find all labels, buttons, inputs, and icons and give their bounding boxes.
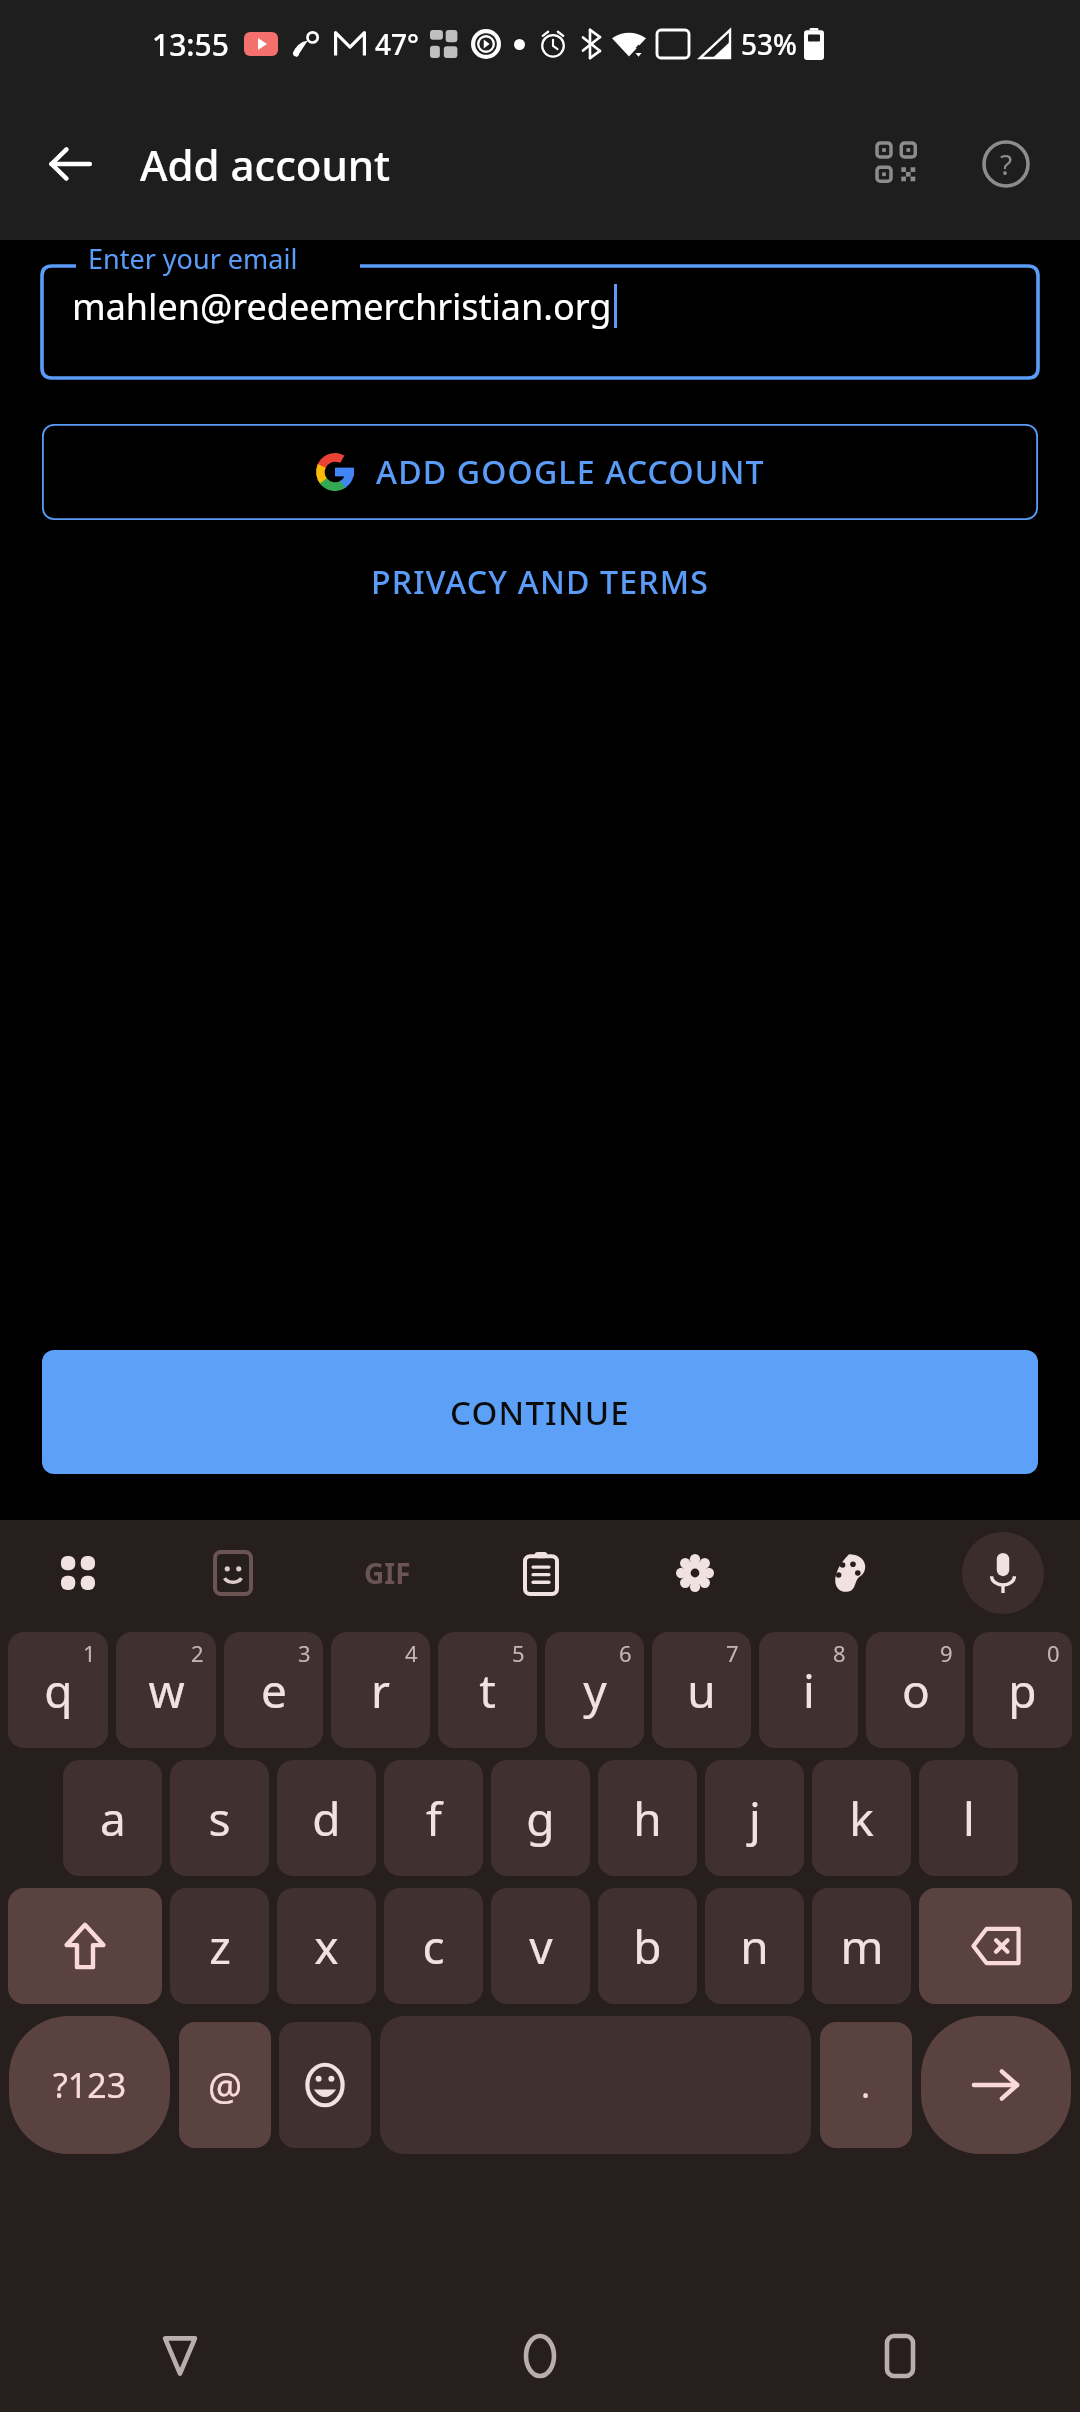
button[interactable]: PRIVACY AND TERMS: [353, 552, 728, 612]
staticText: 1: [83, 1638, 96, 1668]
staticText: x: [314, 1915, 339, 1978]
staticText: 53%: [741, 25, 797, 63]
button[interactable]: a: [63, 1760, 162, 1876]
staticText: k: [849, 1787, 874, 1850]
staticText: 4: [405, 1638, 418, 1668]
button[interactable]: Recent apps: [720, 2300, 1080, 2412]
button[interactable]: Back: [22, 116, 118, 212]
button[interactable]: Enter: [921, 2016, 1071, 2154]
staticText: z: [209, 1915, 231, 1978]
staticText: 13:55: [152, 24, 229, 65]
button[interactable]: s: [170, 1760, 269, 1876]
staticText: v: [529, 1915, 553, 1978]
button[interactable]: n: [705, 1888, 804, 2004]
staticText: GIF: [364, 1554, 411, 1592]
button[interactable]: c: [384, 1888, 483, 2004]
button[interactable]: Period: [820, 2022, 912, 2148]
staticText: 2: [191, 1638, 204, 1668]
staticText: 47°: [375, 25, 419, 63]
staticText: t: [479, 1659, 496, 1722]
button[interactable]: q: [8, 1632, 108, 1748]
staticText: @: [208, 2059, 243, 2111]
button[interactable]: m: [812, 1888, 911, 2004]
button[interactable]: CONTINUE: [42, 1350, 1038, 1474]
button[interactable]: p: [973, 1632, 1072, 1748]
button[interactable]: k: [812, 1760, 911, 1876]
button[interactable]: h: [598, 1760, 697, 1876]
staticText: g: [526, 1787, 555, 1850]
staticText: n: [740, 1915, 769, 1978]
staticText: 8: [833, 1638, 846, 1668]
button[interactable]: w: [116, 1632, 216, 1748]
button[interactable]: Voice input: [926, 1520, 1080, 1626]
button[interactable]: t: [438, 1632, 537, 1748]
staticText: j: [749, 1787, 761, 1850]
staticText: w: [148, 1659, 185, 1722]
staticText: f: [426, 1787, 442, 1850]
button[interactable]: Themes: [772, 1520, 926, 1626]
button[interactable]: y: [545, 1632, 644, 1748]
staticText: u: [687, 1659, 716, 1722]
staticText: i: [803, 1659, 815, 1722]
button[interactable]: z: [170, 1888, 269, 2004]
button[interactable]: Help: [958, 116, 1054, 212]
button[interactable]: GIF: [310, 1520, 464, 1626]
staticText: 0: [1047, 1638, 1060, 1668]
button[interactable]: Back: [0, 2300, 360, 2412]
button[interactable]: Keyboard switch: [0, 1520, 155, 1626]
button[interactable]: e: [224, 1632, 323, 1748]
staticText: ?: [1000, 145, 1013, 183]
staticText: p: [1008, 1659, 1037, 1722]
button[interactable]: Stickers: [155, 1520, 310, 1626]
button[interactable]: ADD GOOGLE ACCOUNT: [42, 424, 1038, 520]
staticText: mahlen@redeemerchristian.org: [72, 282, 612, 331]
button[interactable]: g: [491, 1760, 590, 1876]
button[interactable]: Shift: [8, 1888, 162, 2004]
staticText: o: [902, 1659, 930, 1722]
button[interactable]: Settings: [618, 1520, 772, 1626]
staticText: r: [371, 1659, 390, 1722]
button[interactable]: u: [652, 1632, 751, 1748]
staticText: b: [633, 1915, 662, 1978]
staticText: 9: [940, 1638, 953, 1668]
staticText: q: [44, 1659, 73, 1722]
button[interactable]: b: [598, 1888, 697, 2004]
staticText: e: [261, 1659, 287, 1722]
button[interactable]: Home: [360, 2300, 720, 2412]
staticText: y: [583, 1659, 607, 1722]
staticText: .: [861, 2062, 871, 2108]
button[interactable]: f: [384, 1760, 483, 1876]
staticText: 5: [512, 1638, 525, 1668]
button[interactable]: v: [491, 1888, 590, 2004]
staticText: PRIVACY AND TERMS: [371, 560, 710, 604]
staticText: s: [208, 1787, 231, 1850]
button[interactable]: x: [277, 1888, 376, 2004]
button[interactable]: i: [759, 1632, 858, 1748]
staticText: m: [840, 1915, 884, 1978]
staticText: CONTINUE: [450, 1390, 630, 1435]
staticText: Add account: [140, 136, 391, 193]
staticText: h: [633, 1787, 662, 1850]
button[interactable]: r: [331, 1632, 430, 1748]
button[interactable]: Emoji: [279, 2022, 371, 2148]
button[interactable]: At sign: [179, 2022, 271, 2148]
staticText: l: [963, 1787, 975, 1850]
staticText: ADD GOOGLE ACCOUNT: [376, 450, 765, 494]
staticText: 7: [726, 1638, 739, 1668]
staticText: c: [422, 1915, 445, 1978]
staticText: 6: [619, 1638, 632, 1668]
button[interactable]: d: [277, 1760, 376, 1876]
staticText: a: [100, 1787, 126, 1850]
button[interactable]: Backspace: [919, 1888, 1072, 2004]
button[interactable]: o: [866, 1632, 965, 1748]
button[interactable]: j: [705, 1760, 804, 1876]
button[interactable]: Scan QR code: [850, 116, 946, 212]
button[interactable]: ?123: [9, 2016, 170, 2154]
staticText: d: [312, 1787, 341, 1850]
staticText: 3: [298, 1638, 311, 1668]
button[interactable]: l: [919, 1760, 1018, 1876]
staticText: ?123: [53, 2062, 127, 2108]
staticText: Enter your email: [88, 240, 298, 277]
button[interactable]: Clipboard: [464, 1520, 618, 1626]
